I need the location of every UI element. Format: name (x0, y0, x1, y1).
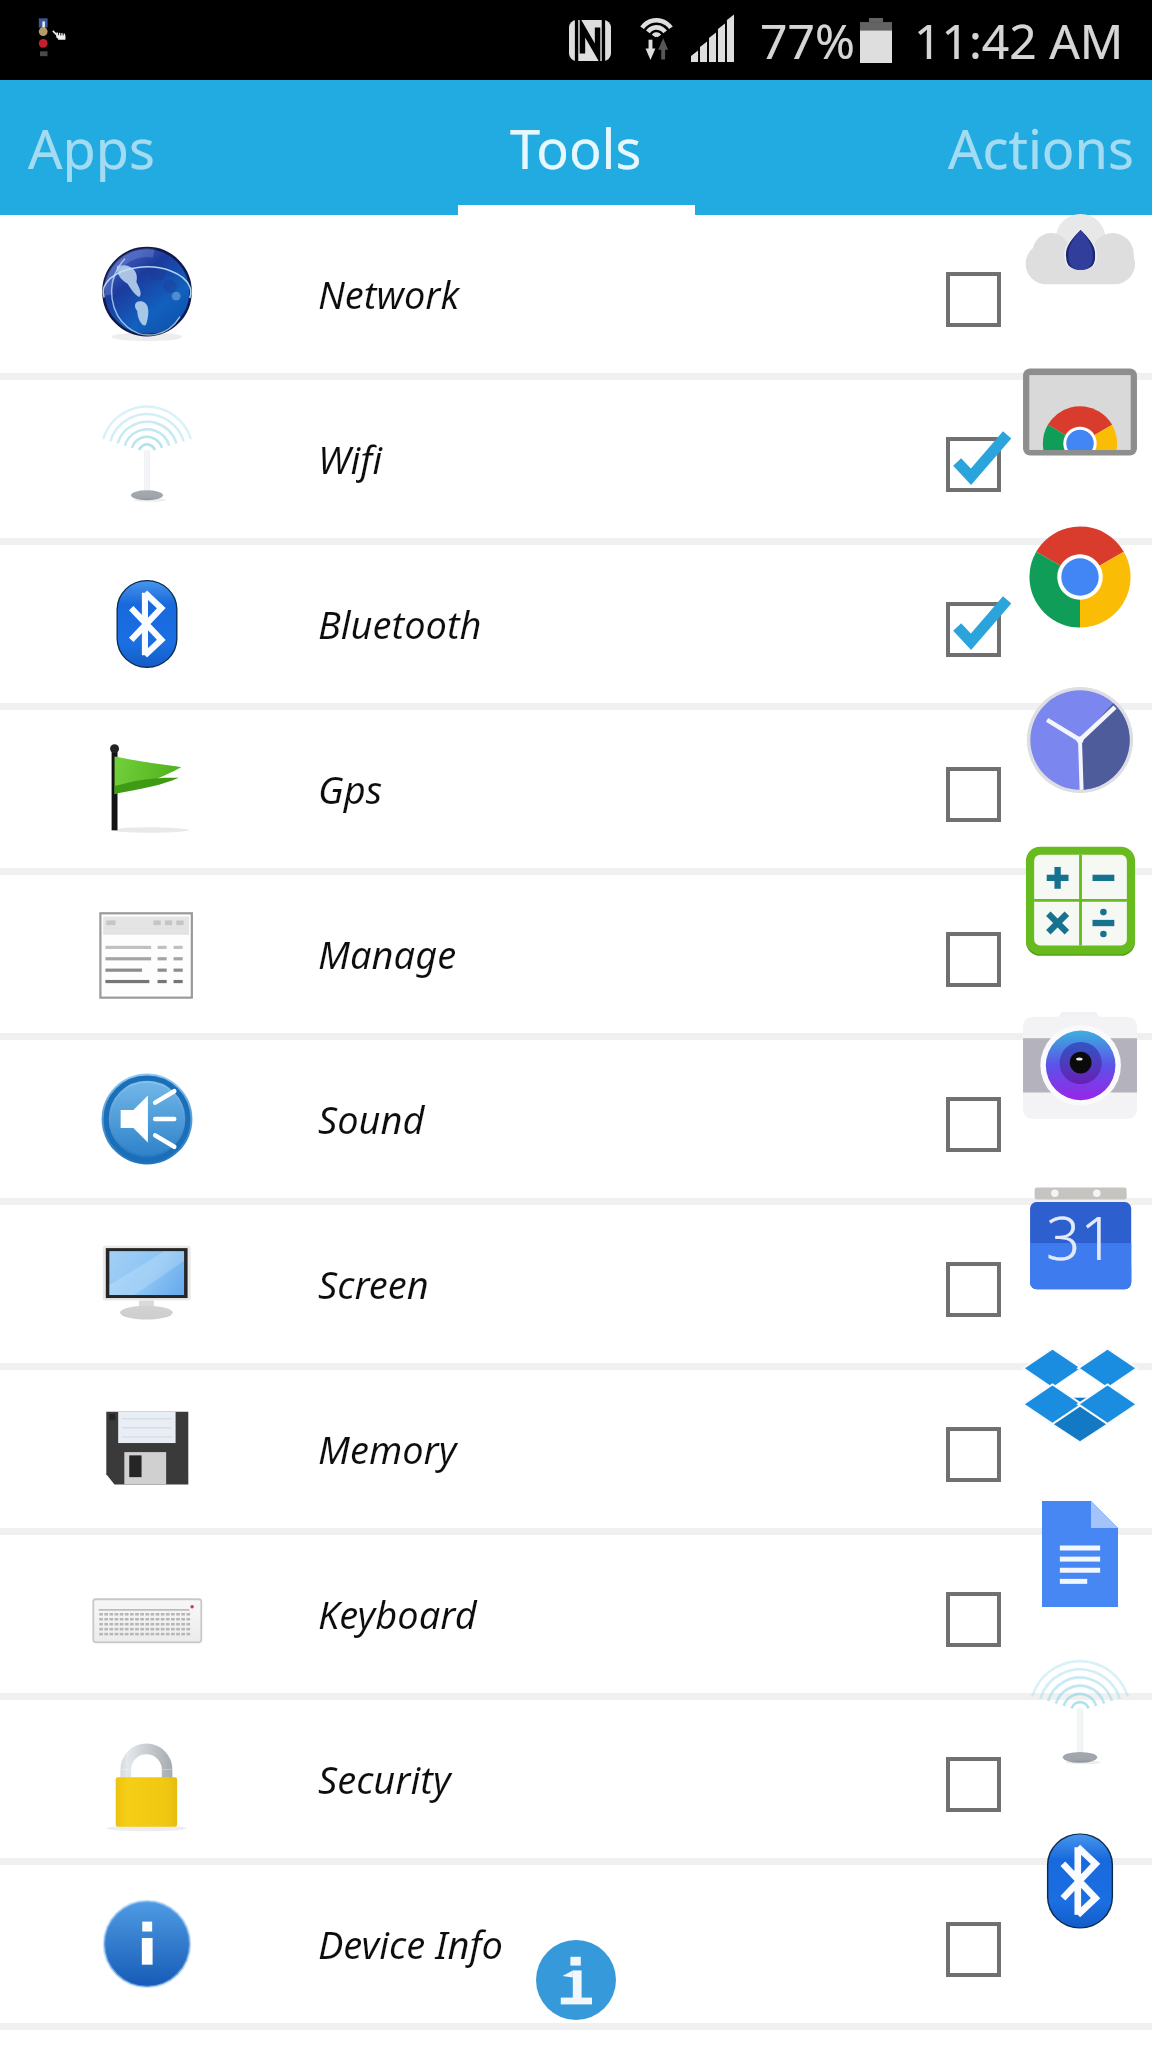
button[interactable]: Toggle Screen (948, 1244, 1019, 1315)
button[interactable]: Toggle Keyboard (948, 1574, 1019, 1645)
button[interactable]: Toggle Bluetooth (948, 584, 1019, 655)
staticText: Apps (28, 111, 155, 185)
staticText: 31 (1046, 1196, 1115, 1278)
staticText: Sound (318, 1093, 425, 1145)
button[interactable]: Sound (0, 1040, 1152, 1198)
button[interactable]: Tools (384, 80, 768, 215)
button[interactable]: Toggle Device Info (948, 1904, 1019, 1975)
button[interactable]: Screen (0, 1205, 1152, 1363)
button[interactable]: Info (536, 1940, 616, 2020)
staticText: Tools (510, 111, 642, 185)
button[interactable]: Toggle Sound (948, 1079, 1019, 1150)
staticText: Actions (948, 111, 1134, 185)
staticText: Manage (318, 928, 457, 980)
button[interactable]: Network (0, 215, 1152, 373)
staticText: Security (318, 1753, 451, 1805)
button[interactable]: Actions (768, 80, 1152, 215)
staticText: Keyboard (318, 1588, 477, 1640)
staticText: Network (318, 268, 460, 320)
button[interactable]: Keyboard (0, 1535, 1152, 1693)
button[interactable]: Toggle Manage (948, 914, 1019, 985)
staticText: 11:42 AM (914, 8, 1124, 73)
button[interactable]: Apps (0, 80, 384, 215)
staticText: Screen (318, 1258, 429, 1310)
button[interactable]: Device Info (0, 1865, 1152, 2023)
button[interactable]: Security (0, 1700, 1152, 1858)
staticText: Gps (318, 763, 383, 815)
staticText: Wifi (318, 433, 383, 485)
button[interactable]: Toggle Memory (948, 1409, 1019, 1480)
button[interactable]: Bluetooth (0, 545, 1152, 703)
button[interactable]: Wifi (0, 380, 1152, 538)
button[interactable]: Manage (0, 875, 1152, 1033)
button[interactable]: Toggle Wifi (948, 419, 1019, 490)
button[interactable]: Toggle Gps (948, 749, 1019, 820)
staticText: 77% (760, 8, 855, 73)
staticText: Device Info (318, 1918, 503, 1970)
button[interactable]: Memory (0, 1370, 1152, 1528)
button[interactable]: Gps (0, 710, 1152, 868)
button[interactable]: Toggle Network (948, 254, 1019, 325)
staticText: Bluetooth (318, 598, 482, 650)
staticText: Memory (318, 1423, 457, 1475)
button[interactable]: Toggle Security (948, 1739, 1019, 1810)
